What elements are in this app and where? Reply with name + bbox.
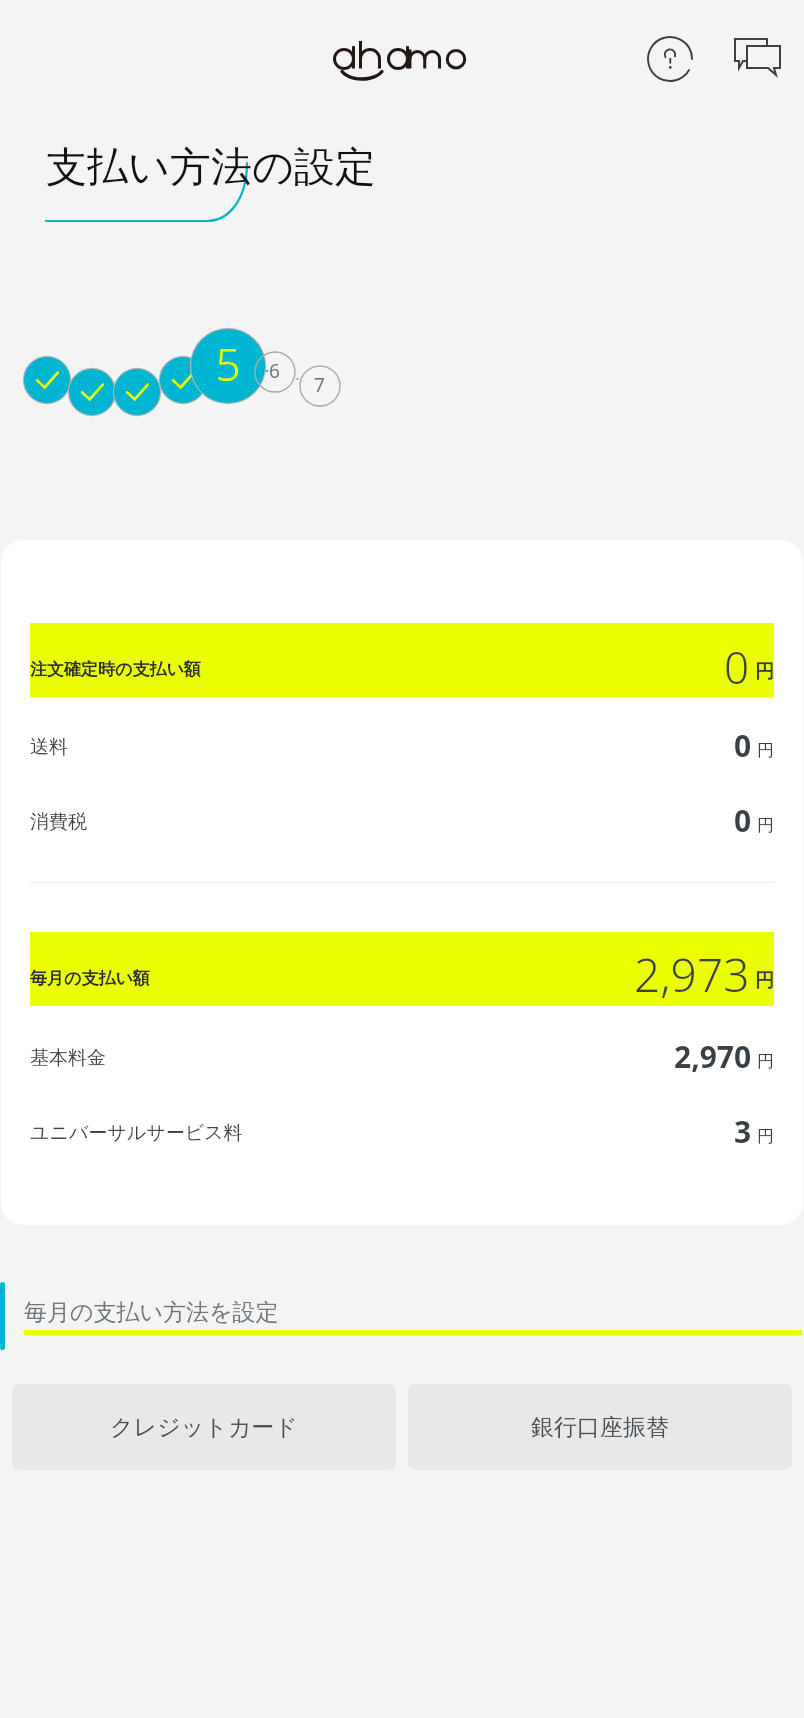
staticText: 銀行口座振替 [531,1413,669,1442]
staticText: 5 [215,334,241,394]
staticText: 円 [757,1126,774,1147]
staticText: 基本料金 [30,1046,106,1070]
staticText: 0 [734,725,752,766]
button[interactable]: Step 6 [255,352,295,392]
staticText: 3 [734,1111,752,1152]
staticText: 送料 [30,735,68,759]
button[interactable]: 毎月の支払い方法を設定 [22,1294,804,1339]
staticText: 毎月の支払い方法を設定 [24,1298,279,1327]
staticText: 毎月の支払い額 [30,968,150,989]
staticText: 円 [757,740,774,761]
staticText: 2,973 [634,943,750,1006]
button[interactable]: Step 5 [191,329,265,403]
staticText: クレジットカード [110,1413,298,1442]
staticText: 消費税 [30,810,87,834]
staticText: 円 [757,815,774,836]
staticText: 支払い方法の設定 [46,142,376,194]
staticText: 2,970 [674,1036,752,1077]
staticText: 円 [755,660,774,684]
staticText: 6 [269,358,280,384]
button[interactable]: Step 7 [300,366,340,406]
staticText: 0 [724,637,750,697]
staticText: 注文確定時の支払い額 [30,659,201,680]
staticText: 7 [314,372,325,398]
staticText: ユニバーサルサービス料 [30,1121,243,1145]
button[interactable]: Chat [728,29,788,89]
staticText: 円 [755,969,774,993]
button[interactable]: Help [640,29,700,89]
staticText: 円 [757,1051,774,1072]
staticText: 0 [734,800,752,841]
button[interactable]: 銀行口座振替 [408,1384,792,1470]
button[interactable]: ahamo [322,31,474,87]
button[interactable]: クレジットカード [12,1384,396,1470]
